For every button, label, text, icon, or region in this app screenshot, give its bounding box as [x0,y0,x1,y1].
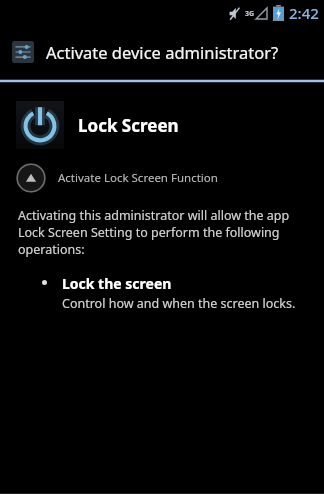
button[interactable]: Lock Screen [16,101,324,149]
staticText: Lock Screen [78,114,179,137]
other: Expand Activate Lock Screen Function [16,163,46,193]
staticText: Activate device administrator? [46,41,279,63]
staticText: Activate Lock Screen Function [58,170,218,186]
staticText: Lock the screen [62,274,172,293]
staticText: Activating this administrator will allow… [18,207,306,258]
button[interactable]: Lock the screen [42,274,300,312]
staticText: 2:42 [289,3,319,23]
staticText: 3G [245,9,255,19]
staticText: Control how and when the screen locks. [62,295,296,312]
button[interactable]: Expand Activate Lock Screen Function [16,163,324,193]
